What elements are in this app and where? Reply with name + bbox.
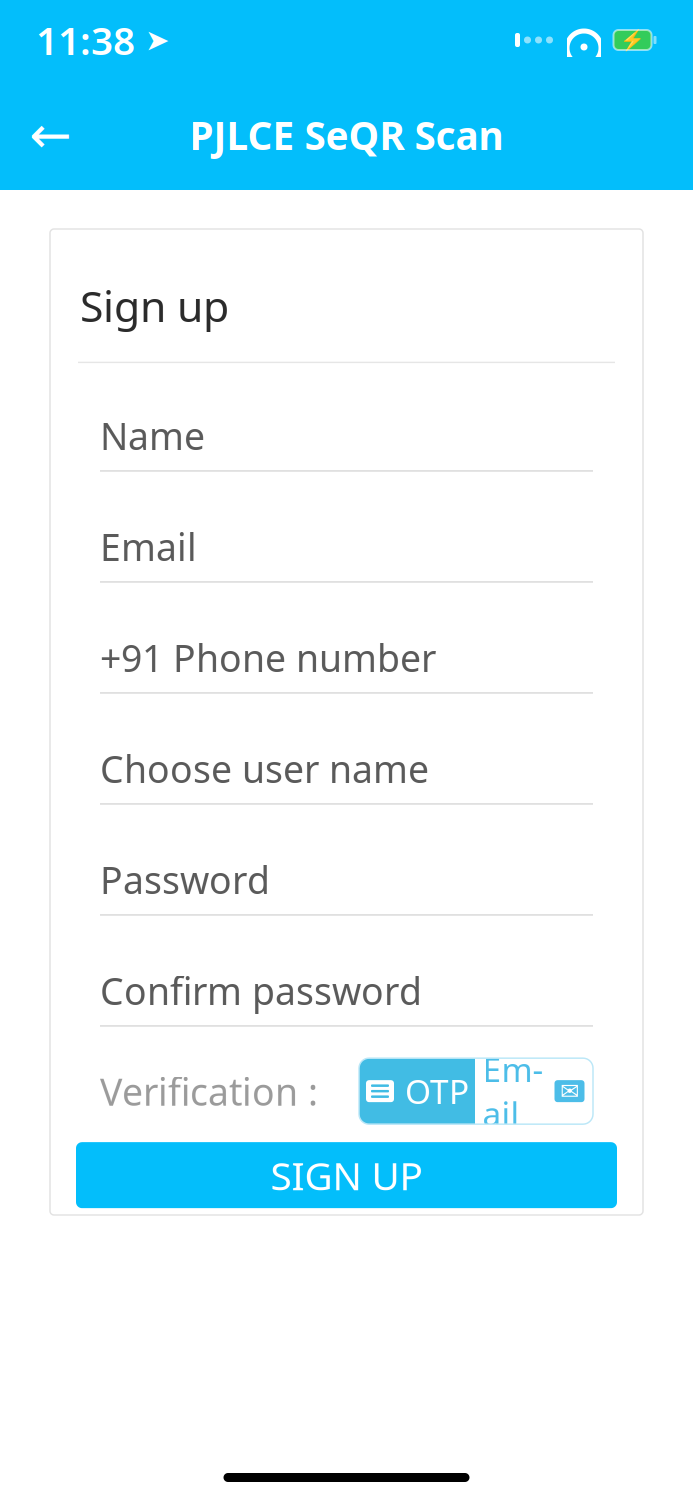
staticText: Choose user name <box>100 744 429 793</box>
staticText: Name <box>100 411 205 460</box>
staticText: ➤ <box>135 23 170 57</box>
staticText: Email <box>100 522 197 571</box>
button[interactable]: Back <box>12 97 88 173</box>
button[interactable]: OTP <box>359 1058 475 1124</box>
staticText: 11:38 <box>36 14 135 66</box>
button[interactable]: SIGN UP <box>76 1142 617 1208</box>
staticText: ✉ <box>560 1078 579 1104</box>
staticText: Confirm password <box>100 966 422 1015</box>
staticText: ← <box>29 106 71 164</box>
button[interactable]: Email <box>475 1058 593 1124</box>
staticText: Verification : <box>100 1066 318 1116</box>
staticText: PJLCE SeQR Scan <box>189 109 503 161</box>
staticText: SIGN UP <box>270 1149 422 1201</box>
staticText: OTP <box>405 1069 469 1113</box>
staticText: Sign up <box>80 277 229 334</box>
staticText: +91 Phone number <box>100 633 436 682</box>
staticText: ⚡ <box>620 29 645 51</box>
staticText: Email <box>482 1047 543 1135</box>
staticText: Password <box>100 855 270 904</box>
